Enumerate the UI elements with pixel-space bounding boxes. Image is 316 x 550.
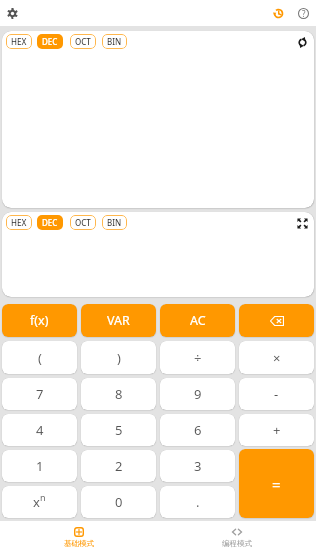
staticText: HEX xyxy=(11,36,27,47)
button[interactable]: 9 xyxy=(160,378,235,410)
button[interactable]: × xyxy=(239,341,314,374)
staticText: 2 xyxy=(115,457,123,475)
staticText: 基础模式 xyxy=(64,539,94,548)
button[interactable]: ( xyxy=(2,341,77,374)
button[interactable]: BIN xyxy=(102,215,127,230)
button[interactable]: 6 xyxy=(160,414,235,446)
button[interactable]: 7 xyxy=(2,378,77,410)
staticText: . xyxy=(196,493,200,511)
button[interactable]: + xyxy=(239,414,314,446)
staticText: BIN xyxy=(107,217,122,228)
staticText: HEX xyxy=(11,217,27,228)
staticText: 编程模式 xyxy=(222,539,252,548)
staticText: 5 xyxy=(115,421,123,439)
staticText: DEC xyxy=(42,217,58,228)
staticText: OCT xyxy=(75,217,91,228)
button[interactable]: Help xyxy=(293,3,314,24)
button[interactable]: ÷ xyxy=(160,341,235,374)
button[interactable]: x xyxy=(2,486,77,518)
button[interactable]: 2 xyxy=(81,450,156,482)
button[interactable]: DEC xyxy=(37,215,63,230)
staticText: 7 xyxy=(36,385,44,403)
button[interactable]: ) xyxy=(81,341,156,374)
staticText: 9 xyxy=(194,385,202,403)
button[interactable]: 4 xyxy=(2,414,77,446)
button[interactable]: HEX xyxy=(6,34,32,49)
staticText: 6 xyxy=(194,421,202,439)
staticText: ? xyxy=(302,8,306,19)
button[interactable]: OCT xyxy=(70,215,96,230)
button[interactable]: 编程模式 xyxy=(158,521,316,550)
button[interactable]: Expand xyxy=(293,214,311,232)
staticText: - xyxy=(274,385,279,403)
button[interactable]: HEX xyxy=(6,215,32,230)
staticText: 1 xyxy=(36,457,44,475)
staticText: ) xyxy=(117,349,121,367)
button[interactable]: f(x) xyxy=(2,304,77,337)
button[interactable]: DEC xyxy=(37,34,63,49)
button[interactable]: Backspace xyxy=(239,304,314,337)
button[interactable]: 3 xyxy=(160,450,235,482)
button[interactable]: 1 xyxy=(2,450,77,482)
staticText: 8 xyxy=(115,385,123,403)
staticText: DEC xyxy=(42,36,58,47)
staticText: ( xyxy=(38,349,42,367)
staticText: 4 xyxy=(36,421,44,439)
staticText: 0 xyxy=(115,493,123,511)
staticText: x xyxy=(33,493,40,511)
staticText: VAR xyxy=(107,312,130,329)
staticText: × xyxy=(273,349,281,367)
button[interactable]: History xyxy=(268,3,289,24)
staticText: + xyxy=(273,421,281,439)
staticText: 3 xyxy=(194,457,202,475)
button[interactable]: Refresh xyxy=(293,33,311,51)
button[interactable]: VAR xyxy=(81,304,156,337)
staticText: ÷ xyxy=(194,349,202,367)
button[interactable]: AC xyxy=(160,304,235,337)
button[interactable]: Settings xyxy=(2,3,23,24)
staticText: OCT xyxy=(75,36,91,47)
button[interactable]: BIN xyxy=(102,34,127,49)
staticText: AC xyxy=(190,312,206,329)
staticText: BIN xyxy=(107,36,122,47)
button[interactable]: 0 xyxy=(81,486,156,518)
button[interactable]: OCT xyxy=(70,34,96,49)
staticText: n xyxy=(40,491,46,503)
button[interactable]: 5 xyxy=(81,414,156,446)
button[interactable]: . xyxy=(160,486,235,518)
staticText: f(x) xyxy=(30,312,49,329)
staticText: = xyxy=(272,474,281,494)
button[interactable]: - xyxy=(239,378,314,410)
button[interactable]: = xyxy=(239,449,314,518)
button[interactable]: 8 xyxy=(81,378,156,410)
button[interactable]: 基础模式 xyxy=(0,521,158,550)
